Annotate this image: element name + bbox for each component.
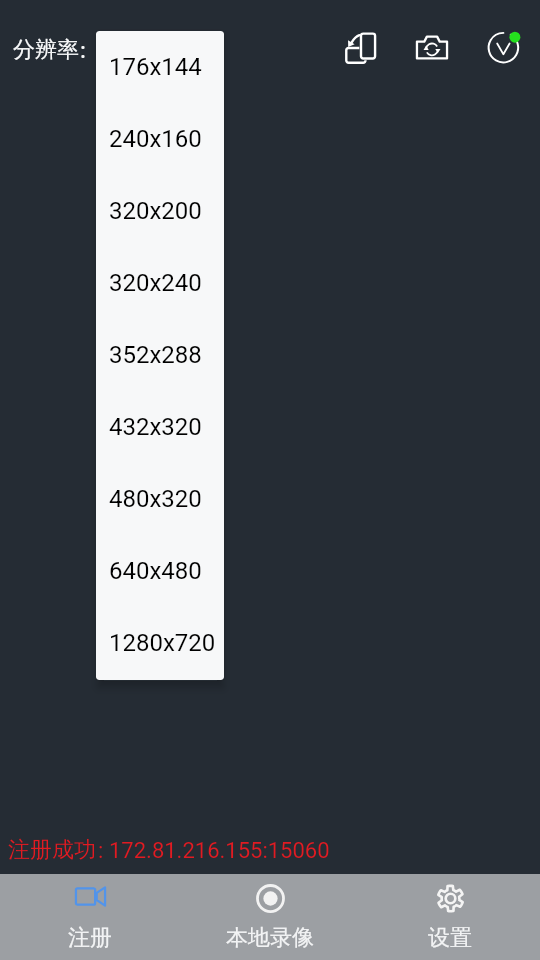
button[interactable]: Connection status: [481, 24, 528, 71]
staticText: 240x160: [109, 125, 202, 153]
staticText: 设置: [428, 924, 472, 952]
staticText: 320x200: [109, 197, 202, 225]
button[interactable]: 1280x720: [96, 607, 224, 679]
staticText: 480x320: [109, 485, 202, 513]
button[interactable]: Rotate screen: [337, 24, 384, 71]
staticText: :: [98, 838, 104, 864]
button[interactable]: 240x160: [96, 103, 224, 175]
button[interactable]: 320x240: [96, 247, 224, 319]
staticText: 352x288: [109, 341, 202, 369]
staticText: :: [80, 34, 86, 64]
button[interactable]: 480x320: [96, 463, 224, 535]
button[interactable]: 432x320: [96, 391, 224, 463]
button[interactable]: 注册: [0, 874, 180, 960]
button[interactable]: Switch camera: [408, 24, 455, 71]
button[interactable]: 352x288: [96, 319, 224, 391]
staticText: 本地录像: [226, 924, 314, 952]
staticText: 分辨率: [13, 36, 79, 64]
staticText: 1280x720: [109, 629, 216, 657]
staticText: 640x480: [109, 557, 202, 585]
staticText: 176x144: [109, 53, 202, 81]
staticText: 注册成功: [8, 836, 96, 864]
button[interactable]: 320x200: [96, 175, 224, 247]
button[interactable]: 176x144: [96, 31, 224, 103]
staticText: 320x240: [109, 269, 202, 297]
staticText: 432x320: [109, 413, 202, 441]
staticText: 注册: [68, 924, 112, 952]
staticText: 172.81.216.155:15060: [109, 838, 330, 864]
button[interactable]: 本地录像: [180, 874, 360, 960]
button[interactable]: 640x480: [96, 535, 224, 607]
button[interactable]: 设置: [360, 874, 540, 960]
